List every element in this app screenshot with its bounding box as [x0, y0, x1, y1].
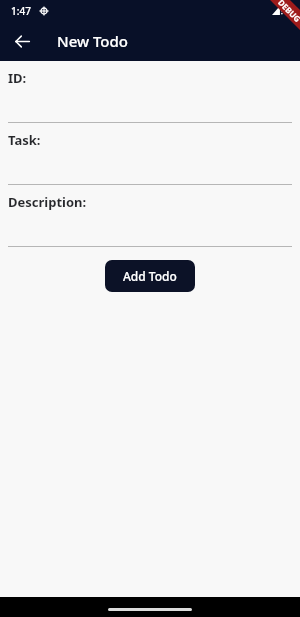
staticText: ID:: [8, 69, 27, 87]
staticText: Add Todo: [123, 268, 177, 284]
staticText: New Todo: [57, 31, 128, 51]
staticText: 1:47: [11, 4, 31, 18]
button[interactable]: Back: [8, 27, 36, 55]
staticText: DEBUG: [276, 0, 300, 24]
staticText: Task:: [8, 131, 41, 149]
staticText: Description:: [8, 193, 87, 211]
button[interactable]: Add Todo: [105, 260, 195, 292]
